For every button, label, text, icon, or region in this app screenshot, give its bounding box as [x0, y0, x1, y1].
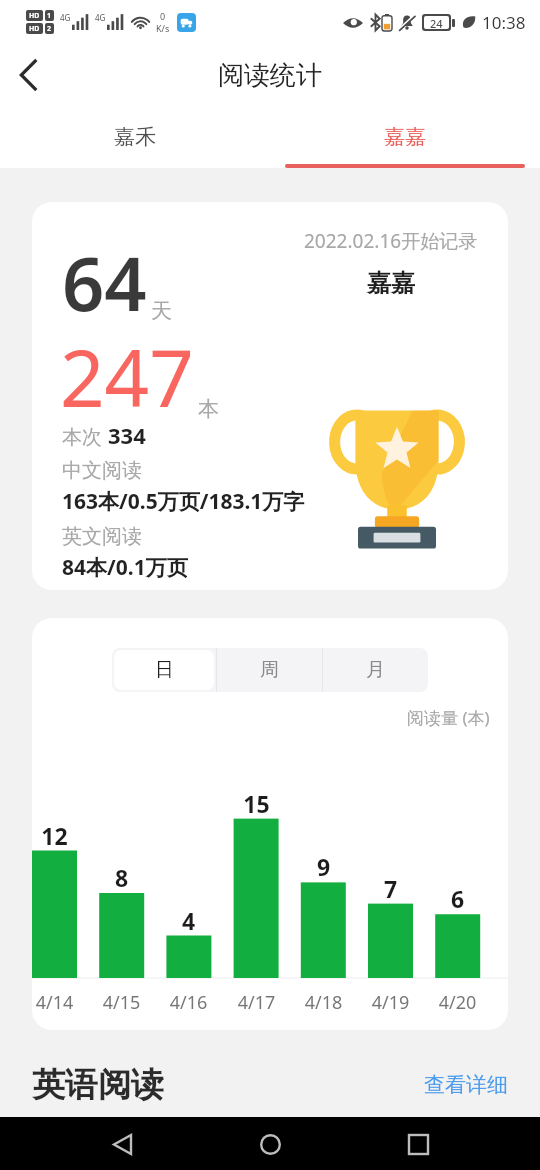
staticText: 英语阅读: [32, 1064, 164, 1106]
button[interactable]: Back: [0, 47, 56, 103]
button[interactable]: Home: [244, 1118, 296, 1170]
staticText: 247: [60, 324, 194, 430]
button[interactable]: 周: [217, 648, 322, 692]
staticText: 84本/0.1万页: [62, 553, 188, 582]
staticText: 8: [99, 862, 144, 893]
staticText: 334: [108, 420, 146, 450]
staticText: 4/17: [225, 990, 288, 1015]
button[interactable]: 月: [323, 648, 428, 692]
button[interactable]: 嘉禾: [0, 106, 270, 168]
button[interactable]: Recent apps: [392, 1118, 444, 1170]
staticText: K/s: [156, 22, 170, 34]
staticText: 本: [198, 396, 219, 422]
staticText: 12: [32, 820, 77, 851]
button[interactable]: Back: [96, 1118, 148, 1170]
staticText: 英文阅读: [62, 524, 142, 549]
staticText: 4/16: [157, 990, 220, 1015]
staticText: 阅读统计: [218, 59, 322, 92]
staticText: 4/15: [90, 990, 153, 1015]
staticText: 6: [435, 883, 480, 914]
staticText: 4G: [95, 12, 106, 23]
staticText: 天: [151, 298, 172, 324]
staticText: 阅读量 (本): [407, 706, 490, 729]
staticText: 24: [430, 16, 443, 29]
button[interactable]: 嘉嘉: [270, 106, 540, 168]
staticText: 嘉嘉: [384, 124, 426, 150]
staticText: 1: [47, 11, 52, 21]
button[interactable]: 查看详细: [424, 1072, 508, 1098]
staticText: 嘉禾: [114, 124, 156, 150]
staticText: 中文阅读: [62, 458, 142, 483]
staticText: HD: [29, 24, 40, 34]
staticText: 月: [366, 658, 385, 682]
staticText: 7: [368, 873, 413, 904]
staticText: 2022.02.16开始记录: [304, 228, 478, 254]
staticText: 9: [301, 851, 346, 882]
staticText: 4/19: [359, 990, 422, 1015]
staticText: 日: [155, 658, 174, 682]
staticText: 周: [260, 658, 279, 682]
staticText: 2: [47, 24, 52, 34]
staticText: 0: [160, 10, 166, 22]
staticText: 15: [234, 788, 279, 819]
staticText: 10:38: [482, 11, 526, 34]
staticText: 64: [62, 232, 147, 333]
staticText: 4/14: [32, 990, 86, 1015]
staticText: HD: [29, 11, 40, 21]
staticText: 本次: [62, 423, 108, 450]
staticText: 查看详细: [424, 1072, 508, 1098]
staticText: 4/18: [292, 990, 355, 1015]
staticText: 嘉嘉: [367, 268, 415, 298]
staticText: 4G: [60, 12, 71, 23]
staticText: 4/20: [426, 990, 489, 1015]
staticText: 163本/0.5万页/183.1万字: [62, 487, 305, 516]
staticText: 4: [166, 905, 211, 936]
button[interactable]: 日: [114, 650, 214, 690]
